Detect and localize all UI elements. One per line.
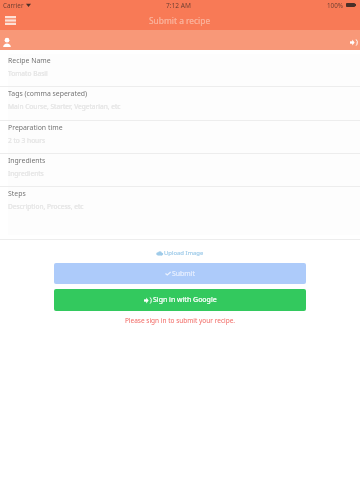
button[interactable]: Upload Image [0,249,360,257]
staticText: Ingredients [8,169,44,178]
staticText: Steps [8,189,26,198]
button[interactable]: Account [0,32,16,50]
staticText: Recipe Name [8,56,51,65]
staticText: Carrier [3,1,24,10]
button[interactable]: Steps [0,187,360,235]
staticText: Preparation time [8,123,63,132]
staticText: Tags (comma seperated) [8,89,88,98]
button[interactable]: Preparation time [0,121,360,154]
button[interactable]: Sign in with Google [54,289,306,311]
staticText: Please sign in to submit your recipe. [0,316,360,325]
staticText: Sign in with Google [153,295,217,305]
button[interactable]: Ingredients [0,154,360,187]
staticText: Main Course, Starter, Vegetarian, etc [8,102,121,111]
staticText: Description, Process, etc [8,202,84,211]
staticText: Submit a recipe [149,15,211,26]
staticText: 2 to 3 hours [8,136,46,145]
staticText: Ingredients [8,156,46,165]
button[interactable]: Sign in [344,33,360,51]
button[interactable]: Recipe Name [0,54,360,87]
staticText: 7:12 AM [166,1,191,10]
staticText: Tomato Basil [8,69,48,78]
staticText: Upload Image [164,249,204,257]
button[interactable]: Menu [0,12,21,30]
staticText: 100% [327,1,344,10]
button[interactable]: Tags (comma seperated) [0,87,360,121]
staticText: Submit [172,269,195,278]
button[interactable]: Submit [54,263,306,284]
